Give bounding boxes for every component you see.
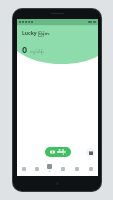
button[interactable]: Tab 3 [43,162,56,176]
button[interactable]: ထီထိုး [45,147,71,157]
button[interactable]: Delete [86,148,95,157]
staticText: ထီ [48,170,51,174]
button[interactable]: Tab 6 [84,162,98,176]
button[interactable]: Tab 4 [56,162,70,176]
staticText: ကျပ်သိန်း [30,49,44,55]
staticText: 0 [22,43,28,55]
button[interactable]: Tab 2 [30,162,43,176]
button[interactable]: Tab 5 [70,162,84,176]
staticText: Lucky မြန်မာ [22,30,50,38]
staticText: ထီထိုး [57,149,66,155]
button[interactable]: Tab 1 [17,162,30,176]
